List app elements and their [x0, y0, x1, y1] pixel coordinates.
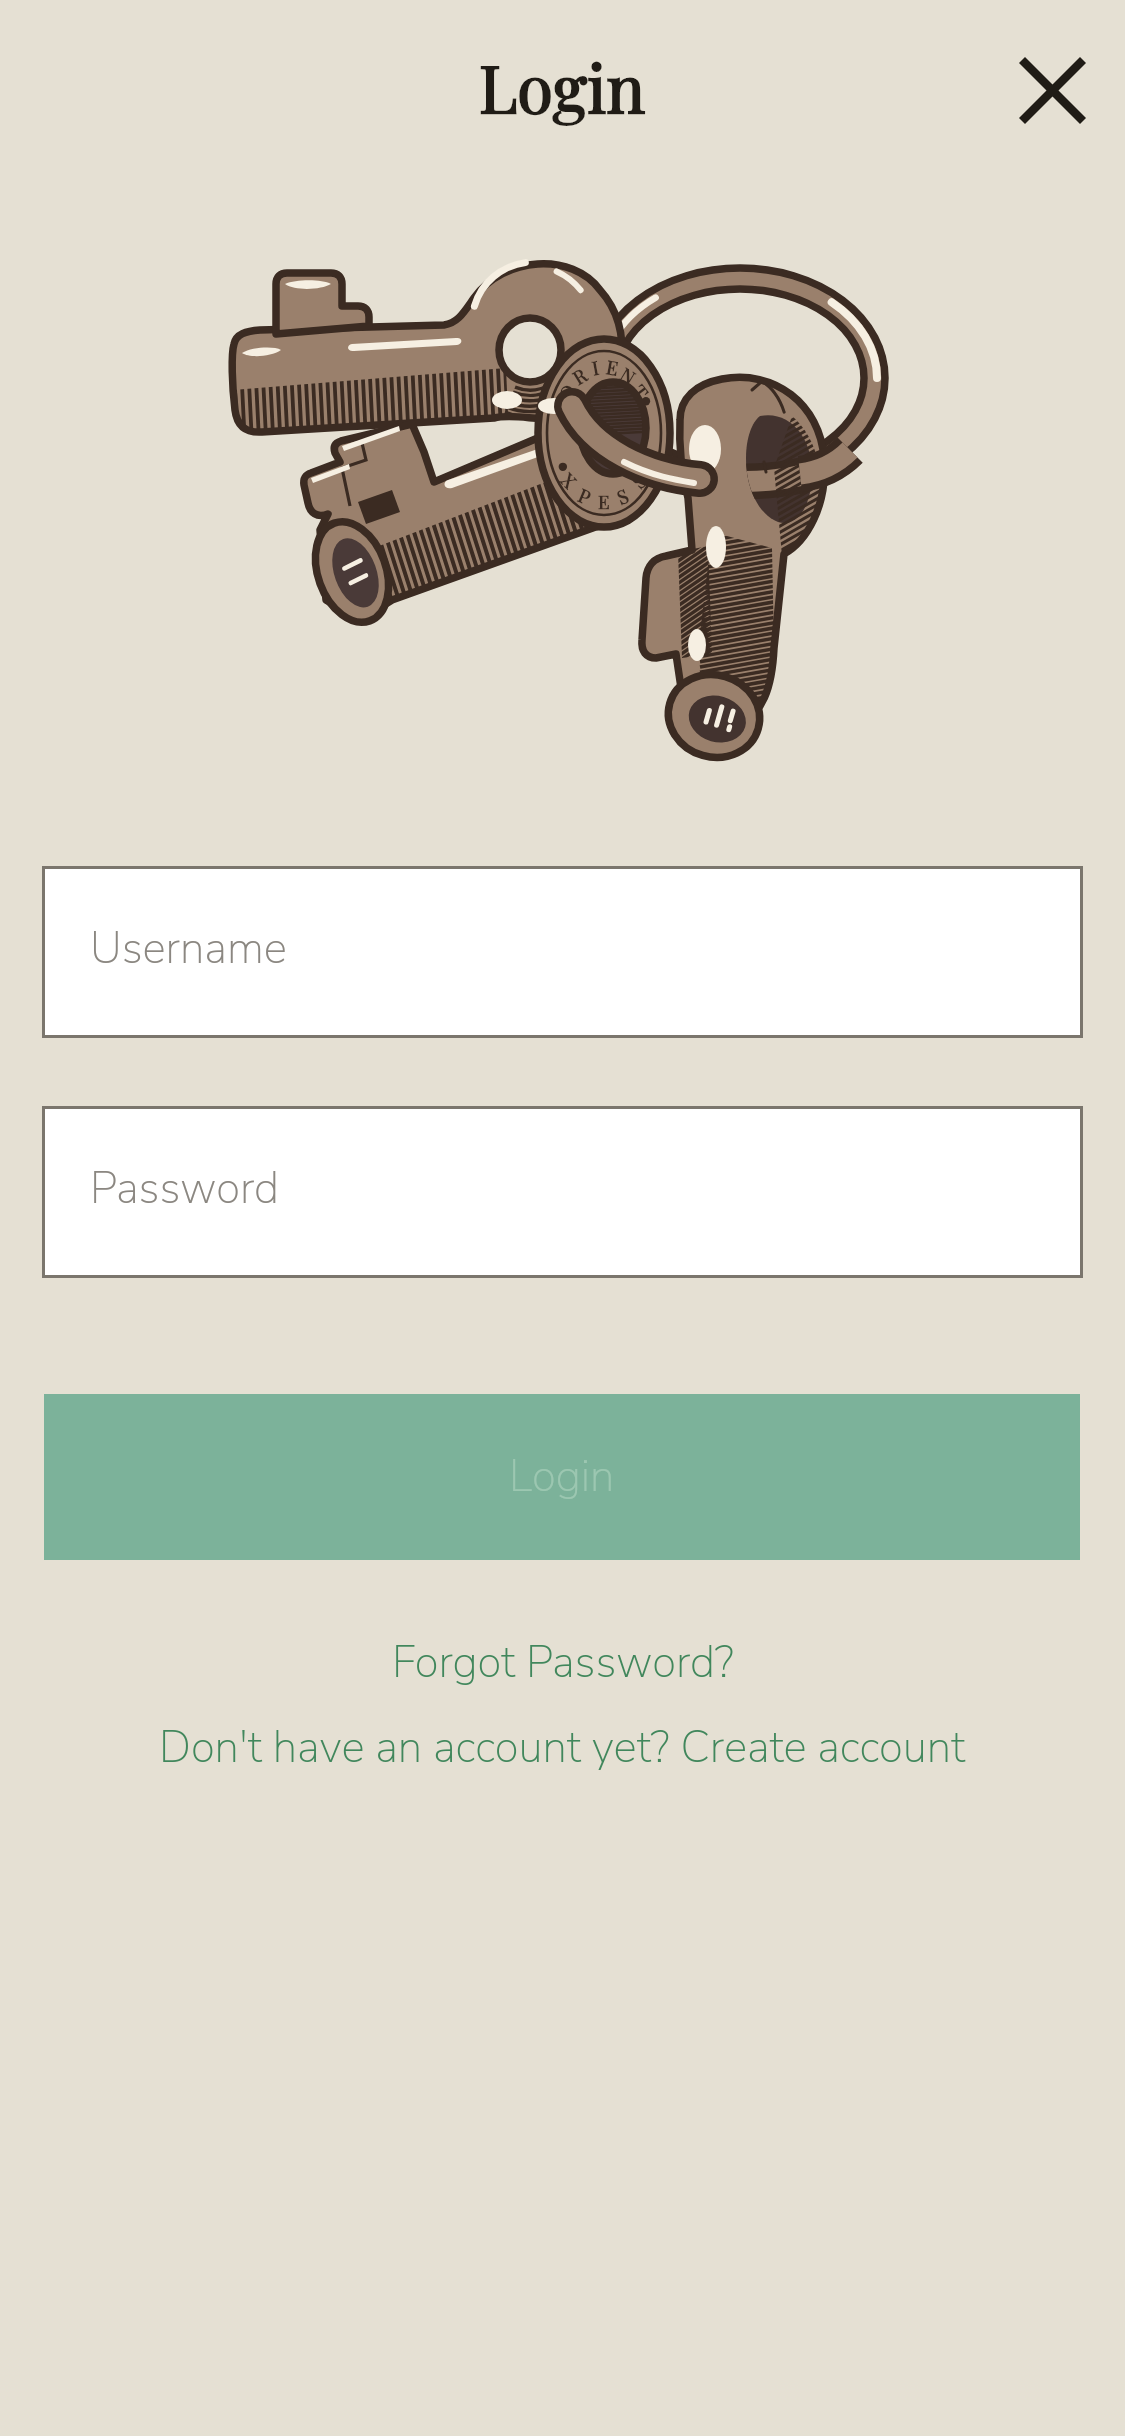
button[interactable]: Close — [1000, 38, 1104, 142]
staticText: Don't have an account yet? Create accoun… — [159, 1718, 966, 1778]
button[interactable]: Password — [42, 1106, 1083, 1278]
button[interactable]: Forgot Password? — [0, 1629, 1125, 1697]
staticText: Login — [509, 1447, 615, 1507]
staticText: Username — [90, 919, 287, 979]
button[interactable]: Username — [42, 866, 1083, 1038]
staticText: Login — [479, 43, 646, 130]
staticText: Password — [90, 1159, 280, 1219]
button[interactable]: Don't have an account yet? Create accoun… — [0, 1714, 1125, 1782]
staticText: Forgot Password? — [392, 1633, 734, 1693]
